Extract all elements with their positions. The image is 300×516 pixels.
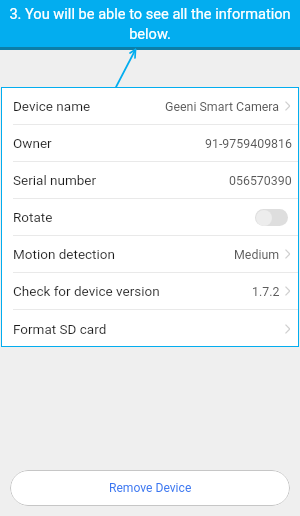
staticText: 1.7.2	[252, 284, 280, 299]
button[interactable]: Motion detection	[1, 236, 299, 272]
staticText: Medium	[234, 247, 280, 262]
staticText: 056570390	[229, 173, 292, 188]
staticText: Geeni Smart Camera	[165, 99, 280, 114]
button[interactable]: Check for device version	[1, 273, 299, 309]
button[interactable]: Remove Device	[10, 470, 290, 506]
staticText: 3. You will be able to see all the infor…	[9, 5, 291, 43]
staticText: Rotate	[13, 209, 53, 225]
staticText: Device name	[13, 98, 91, 114]
staticText: 91-9759409816	[205, 136, 292, 151]
button[interactable]: Device name	[1, 88, 299, 124]
button[interactable]: Rotate	[255, 209, 288, 226]
button[interactable]: Rotate	[1, 199, 299, 235]
staticText: Remove Device	[109, 481, 192, 495]
staticText: Serial number	[13, 172, 97, 188]
staticText: Motion detection	[13, 246, 115, 262]
button[interactable]: Serial number	[1, 162, 299, 198]
staticText: Format SD card	[13, 321, 107, 337]
staticText: Owner	[13, 135, 52, 151]
button[interactable]: Format SD card	[1, 310, 299, 347]
button[interactable]: Owner	[1, 125, 299, 161]
staticText: Check for device version	[13, 283, 160, 299]
